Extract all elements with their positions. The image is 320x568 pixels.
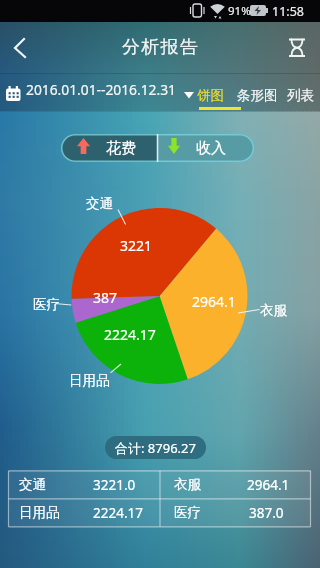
staticText: 3221.0 — [93, 476, 136, 494]
button[interactable] — [9, 471, 160, 499]
staticText: 2224.17 — [104, 325, 156, 343]
staticText: 日用品 — [69, 372, 110, 389]
staticText: 列表 — [287, 87, 314, 104]
button[interactable] — [160, 499, 310, 527]
staticText: 饼图 — [197, 87, 224, 104]
staticText: 分析报告 — [122, 36, 199, 59]
button[interactable]: 饼图 — [193, 80, 228, 110]
staticText: 合计: 8796.27 — [115, 439, 196, 457]
button[interactable]: 列表 — [283, 80, 318, 110]
button[interactable] — [278, 26, 316, 66]
staticText: 医疗 — [174, 504, 201, 521]
staticText: 交通 — [86, 195, 113, 212]
staticText: 日用品 — [19, 504, 60, 521]
button[interactable]: 花费 — [61, 134, 157, 162]
staticText: 衣服 — [260, 302, 287, 319]
button[interactable]: 收入 — [157, 134, 254, 162]
button[interactable] — [9, 499, 160, 527]
staticText: 花费 — [106, 139, 136, 158]
staticText: 2964.1 — [192, 292, 236, 310]
staticText: 衣服 — [174, 476, 201, 493]
staticText: 2016.01.01--2016.12.31 — [26, 80, 176, 99]
button[interactable]: 2016.01.01--2016.12.31 — [0, 74, 200, 110]
staticText: 条形图 — [237, 87, 278, 104]
staticText: 387.0 — [249, 504, 284, 522]
staticText: 11:58 — [272, 3, 304, 20]
staticText: 收入 — [196, 139, 226, 158]
staticText: 387 — [93, 288, 118, 306]
staticText: 交通 — [19, 476, 46, 493]
staticText: 3221 — [120, 236, 153, 254]
staticText: 2224.17 — [93, 504, 143, 522]
button[interactable] — [160, 471, 310, 499]
staticText: 91% — [228, 3, 251, 19]
button[interactable] — [0, 24, 46, 70]
staticText: 医疗 — [33, 296, 60, 313]
button[interactable]: 条形图 — [231, 80, 283, 110]
staticText: 2964.1 — [247, 476, 290, 494]
